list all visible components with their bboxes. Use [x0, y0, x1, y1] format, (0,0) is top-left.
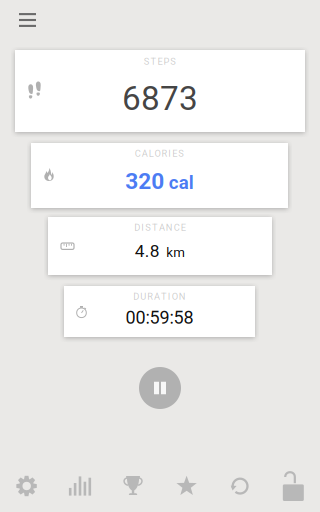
staticText: T [152, 222, 158, 233]
staticText: 4.8 [135, 241, 160, 261]
staticText: C [174, 222, 180, 233]
staticText: E [172, 148, 177, 159]
staticText: E [157, 56, 162, 67]
button[interactable]: Pause [139, 367, 181, 409]
button[interactable]: Lock [267, 460, 320, 512]
button[interactable]: Menu [5, 0, 50, 40]
button[interactable]: Achievements [107, 460, 160, 512]
staticText: O [155, 148, 161, 159]
button[interactable]: Settings [0, 460, 53, 512]
staticText: cal [169, 172, 194, 194]
button[interactable]: Statistics [53, 460, 107, 512]
staticText: D [134, 222, 140, 233]
staticText: R [161, 148, 167, 159]
staticText: N [166, 222, 173, 233]
staticText: I [168, 148, 171, 159]
staticText: S [145, 222, 151, 233]
staticText: 6873 [122, 79, 198, 118]
staticText: km [166, 245, 185, 260]
staticText: U [140, 291, 146, 302]
staticText: P [163, 56, 169, 67]
staticText: I [141, 222, 144, 233]
staticText: S [170, 56, 176, 67]
staticText: A [154, 291, 160, 302]
staticText: L [149, 148, 154, 159]
staticText: R [147, 291, 153, 302]
staticText: S [178, 148, 184, 159]
staticText: T [161, 291, 167, 302]
staticText: I [168, 291, 171, 302]
staticText: S [144, 56, 150, 67]
button[interactable]: Reset [213, 460, 267, 512]
staticText: T [151, 56, 157, 67]
staticText: E [181, 222, 186, 233]
button[interactable]: Goals [160, 460, 213, 512]
staticText: A [142, 148, 148, 159]
staticText: N [179, 291, 186, 302]
staticText: 00:59:58 [125, 307, 193, 328]
staticText: C [135, 148, 141, 159]
staticText: D [133, 291, 139, 302]
staticText: 320 [125, 168, 164, 195]
staticText: A [159, 222, 165, 233]
staticText: O [172, 291, 178, 302]
